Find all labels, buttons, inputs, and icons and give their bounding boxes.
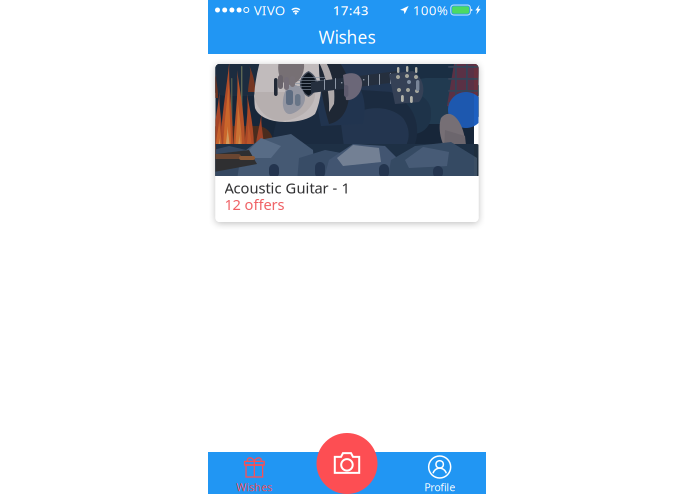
button[interactable]: Profile (393, 452, 486, 494)
staticText: Acoustic Guitar - 1 (224, 178, 349, 197)
button[interactable]: Take photo (316, 433, 377, 494)
button[interactable]: Wishes (208, 452, 301, 494)
staticText: Wishes (236, 480, 272, 494)
staticText: VIVO (254, 1, 285, 19)
staticText: Wishes (318, 25, 375, 48)
staticText: Profile (424, 480, 455, 494)
staticText: 17:43 (333, 1, 369, 19)
staticText: 12 offers (224, 194, 284, 214)
button[interactable]: Acoustic Guitar - 1 (215, 64, 478, 222)
staticText: 100% (413, 1, 448, 19)
